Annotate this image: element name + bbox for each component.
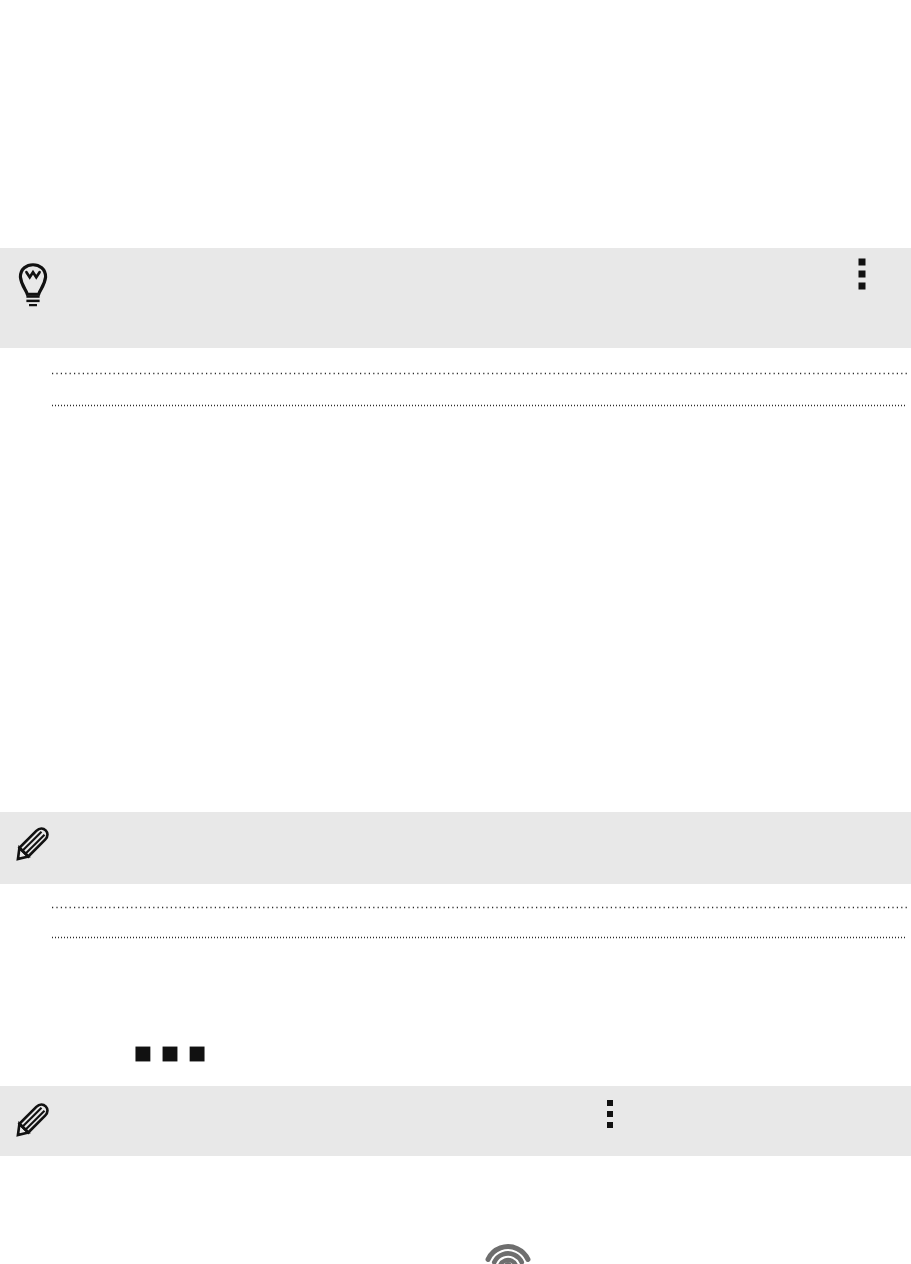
button[interactable]: Note [8,1096,56,1144]
button[interactable]: More options [840,252,884,296]
button[interactable]: Tip [12,258,54,306]
button[interactable]: Wi-Fi [486,1236,530,1264]
button[interactable]: More options [590,1094,630,1134]
button[interactable]: More [150,1042,190,1066]
button[interactable]: Note [8,820,56,868]
